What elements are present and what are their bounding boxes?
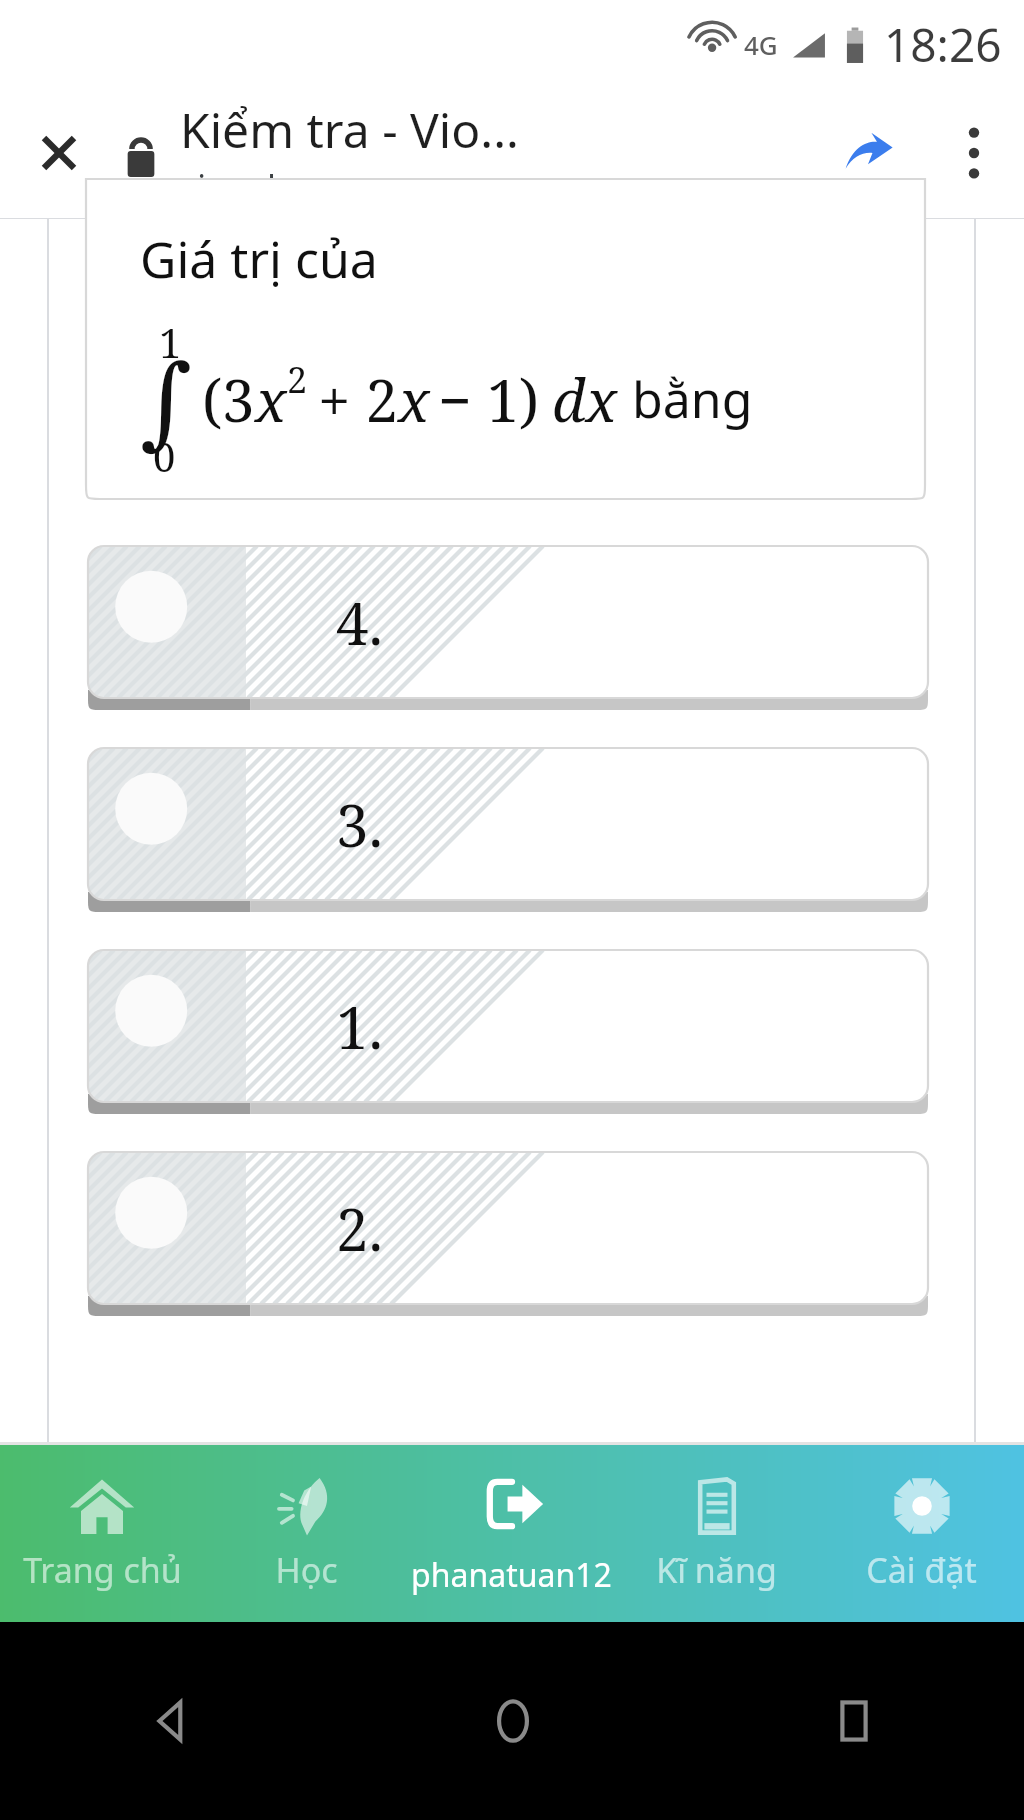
- staticText: Học: [275, 1547, 338, 1593]
- button[interactable]: Close: [0, 88, 118, 218]
- button[interactable]: Kĩ năng: [614, 1445, 819, 1622]
- button[interactable]: Back: [0, 1622, 342, 1820]
- staticText: Cài đặt: [866, 1547, 977, 1593]
- staticText: 1: [159, 315, 182, 369]
- button[interactable]: Recent apps: [683, 1622, 1024, 1820]
- staticText: 3.: [336, 785, 383, 864]
- staticText: dx: [552, 360, 618, 439]
- button[interactable]: 2.: [88, 1152, 928, 1322]
- button[interactable]: Cài đặt: [819, 1445, 1024, 1622]
- staticText: phanatuan123: [409, 1553, 614, 1597]
- button[interactable]: 3.: [88, 748, 928, 918]
- button[interactable]: More options: [924, 88, 1024, 218]
- staticText: 1.: [336, 987, 383, 1066]
- button[interactable]: 4.: [88, 546, 928, 716]
- staticText: − 1): [438, 360, 540, 439]
- staticText: (3: [202, 360, 255, 439]
- button[interactable]: phanatuan123: [409, 1445, 614, 1622]
- button[interactable]: 1.: [88, 950, 928, 1120]
- staticText: Kĩ năng: [656, 1547, 777, 1593]
- staticText: 2: [287, 355, 308, 404]
- staticText: + 2: [318, 360, 398, 439]
- staticText: x: [398, 360, 430, 439]
- staticText: ∫: [140, 343, 192, 459]
- button[interactable]: Trang chủ: [0, 1445, 204, 1622]
- staticText: bằng: [632, 365, 753, 433]
- staticText: Giá trị của: [140, 225, 378, 293]
- button[interactable]: Share: [812, 88, 924, 218]
- staticText: 2.: [336, 1189, 383, 1268]
- staticText: 0: [153, 429, 176, 483]
- staticText: x: [255, 360, 287, 439]
- staticText: 4.: [336, 583, 383, 662]
- button[interactable]: Học: [204, 1445, 409, 1622]
- staticText: Kiểm tra - Vio...: [180, 97, 519, 162]
- staticText: 18:26: [884, 13, 1002, 76]
- staticText: vio.edu.vn: [180, 164, 345, 210]
- button[interactable]: Home: [342, 1622, 683, 1820]
- staticText: 4G: [744, 27, 778, 62]
- staticText: Trang chủ: [23, 1547, 182, 1593]
